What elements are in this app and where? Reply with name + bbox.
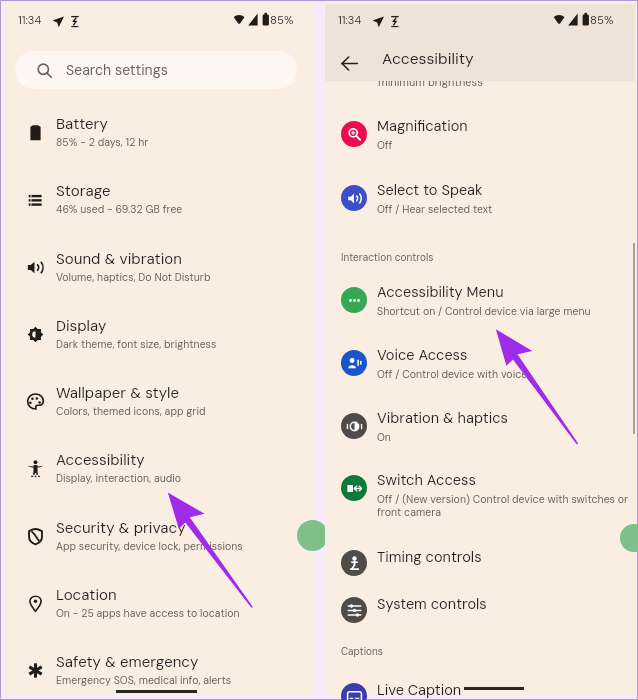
staticText: Off	[377, 139, 393, 153]
button[interactable]: Next slide	[297, 520, 328, 551]
staticText: Search settings	[66, 61, 168, 79]
button[interactable]: Select to Speak	[325, 175, 635, 217]
staticText: Vibration & haptics	[377, 409, 508, 428]
staticText: Sound & vibration	[56, 249, 182, 269]
staticText: front camera	[377, 506, 442, 520]
button[interactable]: Wallpaper & style	[5, 374, 313, 436]
button[interactable]: Display	[5, 307, 313, 369]
staticText: Accessibility Menu	[377, 283, 504, 302]
staticText: Display, interaction, audio	[56, 472, 182, 486]
staticText: Volume, haptics, Do Not Disturb	[56, 271, 211, 285]
staticText: Timing controls	[377, 548, 482, 567]
button[interactable]: Security & privacy	[5, 509, 313, 571]
staticText: 46% used - 69.32 GB free	[56, 203, 183, 217]
staticText: Accessibility	[56, 450, 145, 470]
button[interactable]: Voice Access	[325, 340, 635, 382]
staticText: 11:34	[18, 13, 42, 27]
button[interactable]: Vibration & haptics	[325, 403, 635, 445]
button[interactable]: Live Caption	[325, 675, 635, 700]
button[interactable]: Sound & vibration	[5, 240, 313, 302]
staticText: Off / Hear selected text	[377, 203, 493, 217]
staticText: Battery	[56, 114, 108, 134]
button[interactable]: Next slide	[620, 524, 638, 552]
staticText: Live Caption	[377, 681, 462, 700]
staticText: Captions	[341, 645, 383, 658]
staticText: Colors, themed icons, app grid	[56, 405, 206, 419]
staticText: Shortcut on / Control device via large m…	[377, 305, 591, 319]
staticText: Emergency SOS, medical info, alerts	[56, 674, 232, 688]
staticText: 11:34	[338, 13, 362, 27]
staticText: 85% - 2 days, 12 hr	[56, 136, 149, 150]
staticText: Dark theme, font size, brightness	[56, 338, 217, 352]
staticText: System controls	[377, 595, 487, 614]
staticText: Voice Access	[377, 346, 468, 365]
staticText: Off / (New version) Control device with …	[377, 493, 629, 507]
button[interactable]: Accessibility Menu	[325, 277, 635, 319]
staticText: Safety & emergency	[56, 652, 199, 672]
button[interactable]: Magnification	[325, 111, 635, 153]
staticText: Storage	[56, 181, 111, 201]
button[interactable]: Switch Access	[325, 465, 635, 517]
button[interactable]: System controls	[325, 589, 635, 623]
staticText: 85%	[590, 13, 614, 28]
button[interactable]: Timing controls	[325, 542, 635, 576]
staticText: Accessibility	[382, 49, 474, 69]
button[interactable]: Battery	[5, 105, 313, 167]
staticText: Location	[56, 585, 117, 605]
staticText: Display	[56, 316, 107, 336]
staticText: 85%	[270, 13, 294, 28]
button[interactable]: Safety & emergency	[5, 643, 313, 700]
staticText: minimum brightness	[378, 75, 483, 89]
button[interactable]: Accessibility	[5, 441, 313, 503]
staticText: App security, device lock, permissions	[56, 540, 243, 554]
staticText: Security & privacy	[56, 518, 186, 538]
staticText: Switch Access	[377, 471, 476, 490]
button[interactable]: Location	[5, 576, 313, 638]
staticText: Select to Speak	[377, 181, 483, 200]
staticText: Magnification	[377, 117, 468, 136]
button[interactable]: Search settings	[15, 51, 297, 89]
staticText: Wallpaper & style	[56, 383, 179, 403]
button[interactable]: Back	[331, 45, 367, 81]
staticText: Interaction controls	[341, 251, 434, 264]
button[interactable]: Storage	[5, 172, 313, 234]
staticText: On	[377, 431, 391, 445]
staticText: On - 25 apps have access to location	[56, 607, 240, 621]
staticText: Off / Control device with voice	[377, 368, 528, 382]
